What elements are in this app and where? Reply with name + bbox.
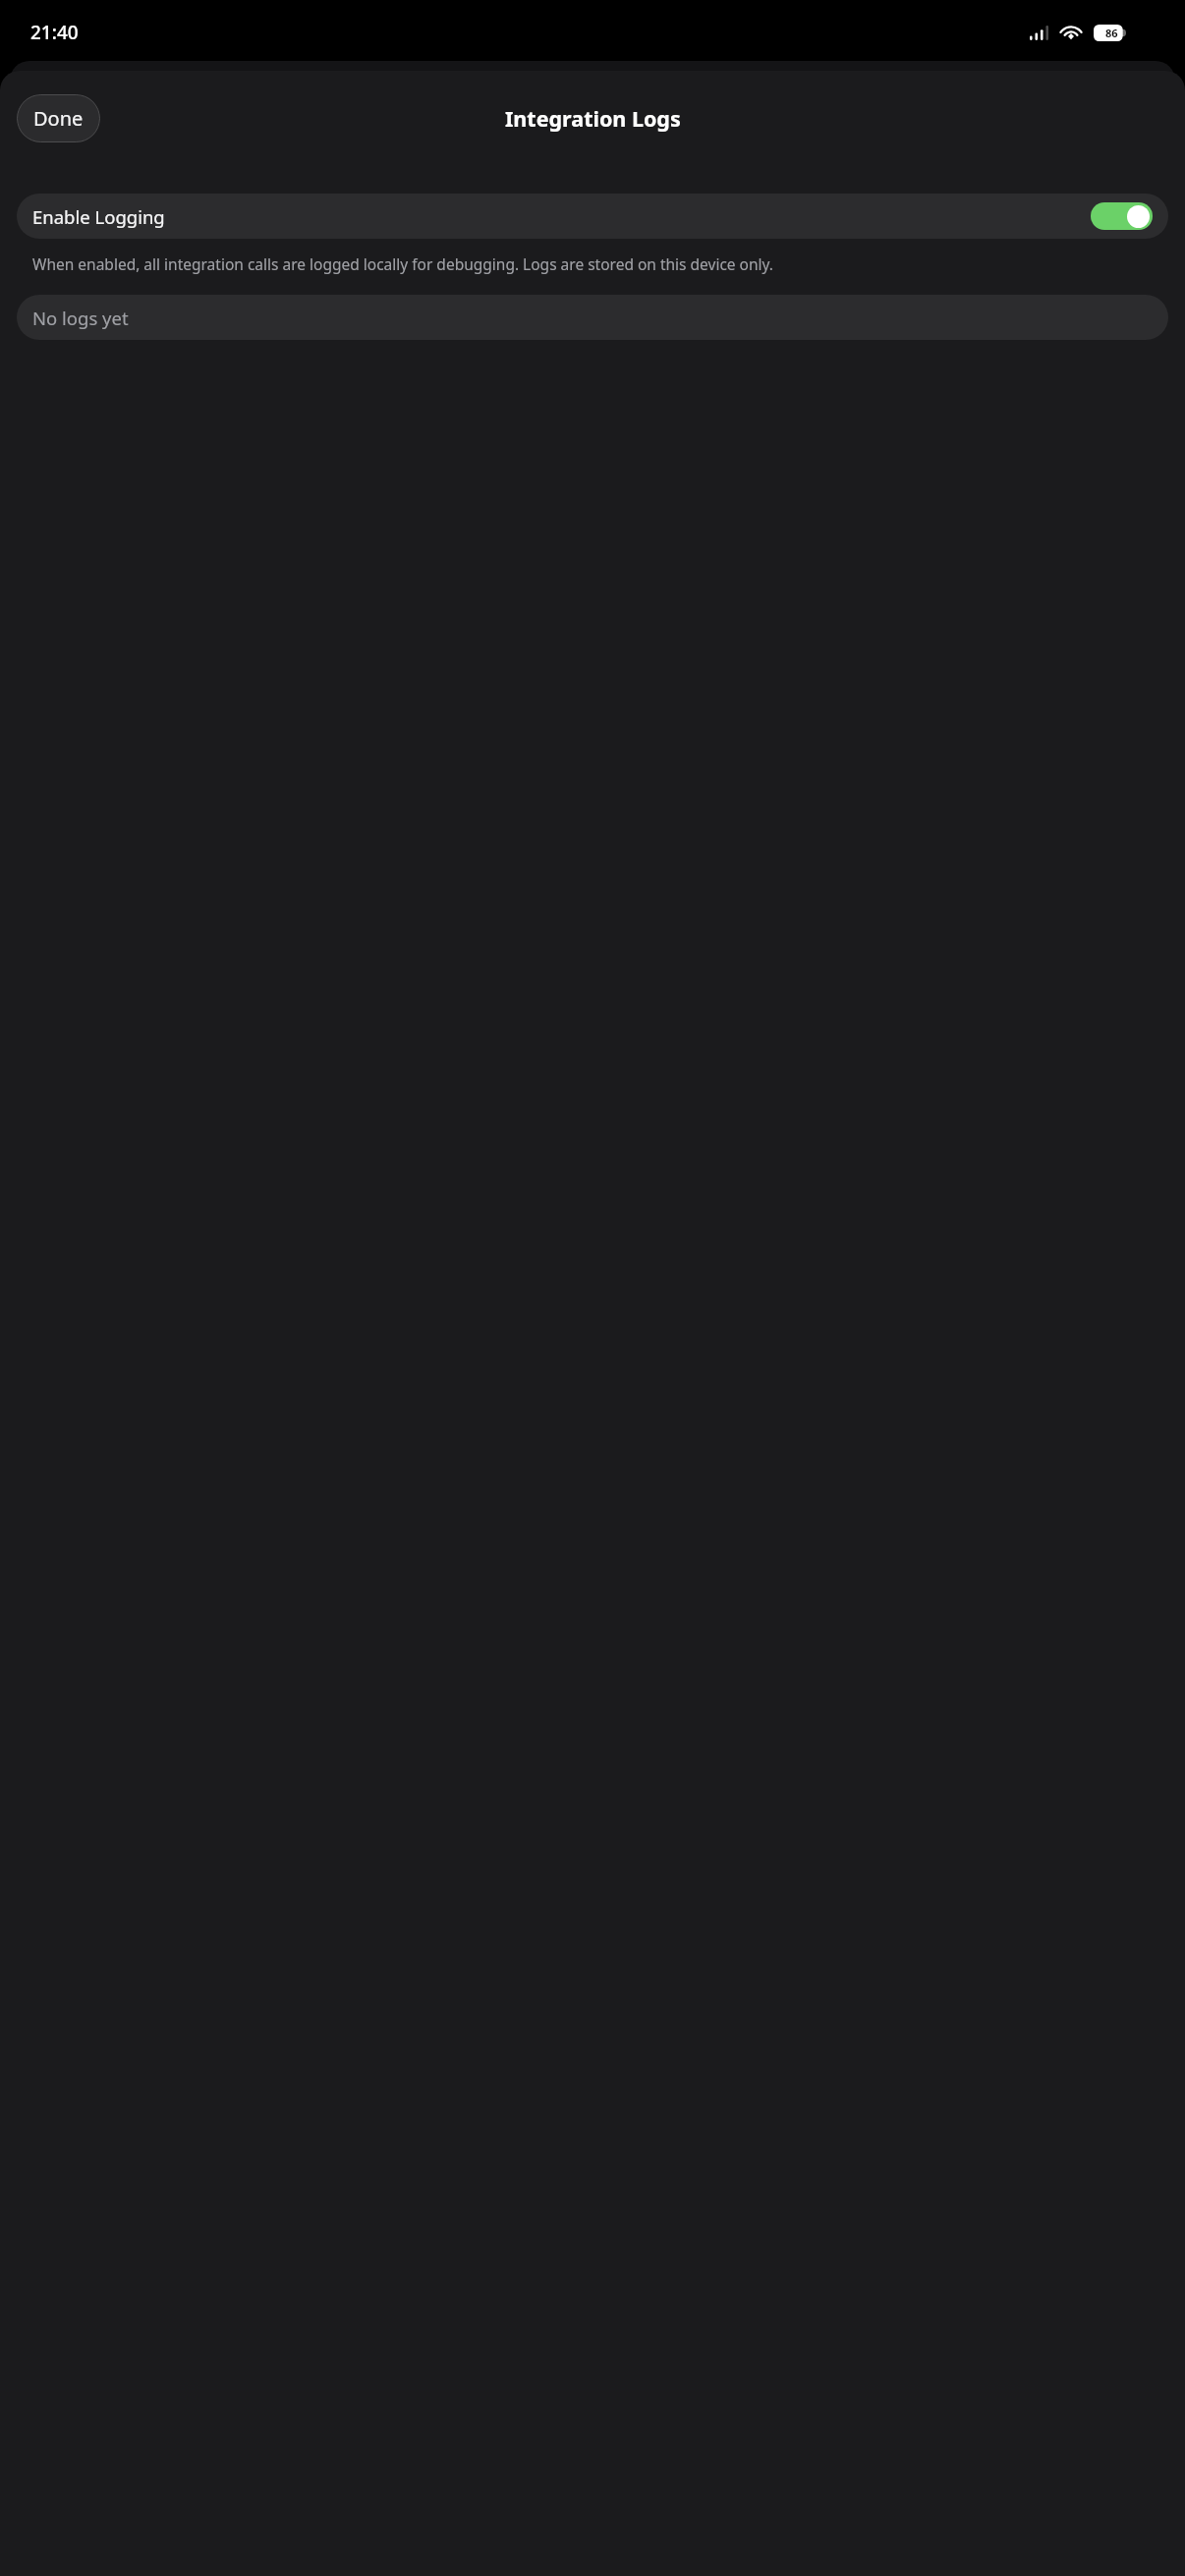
- button[interactable]: Enable Logging: [17, 194, 1168, 239]
- staticText: 86: [1105, 26, 1118, 40]
- staticText: When enabled, all integration calls are …: [32, 253, 774, 274]
- staticText: Done: [33, 105, 84, 132]
- button[interactable]: No logs yet: [17, 295, 1168, 340]
- staticText: Enable Logging: [32, 204, 1091, 229]
- button[interactable]: Done: [17, 94, 100, 142]
- staticText: 21:40: [30, 20, 79, 45]
- staticText: Integration Logs: [505, 104, 681, 133]
- other: Enable Logging toggle, on: [1091, 202, 1153, 230]
- staticText: No logs yet: [32, 306, 129, 330]
